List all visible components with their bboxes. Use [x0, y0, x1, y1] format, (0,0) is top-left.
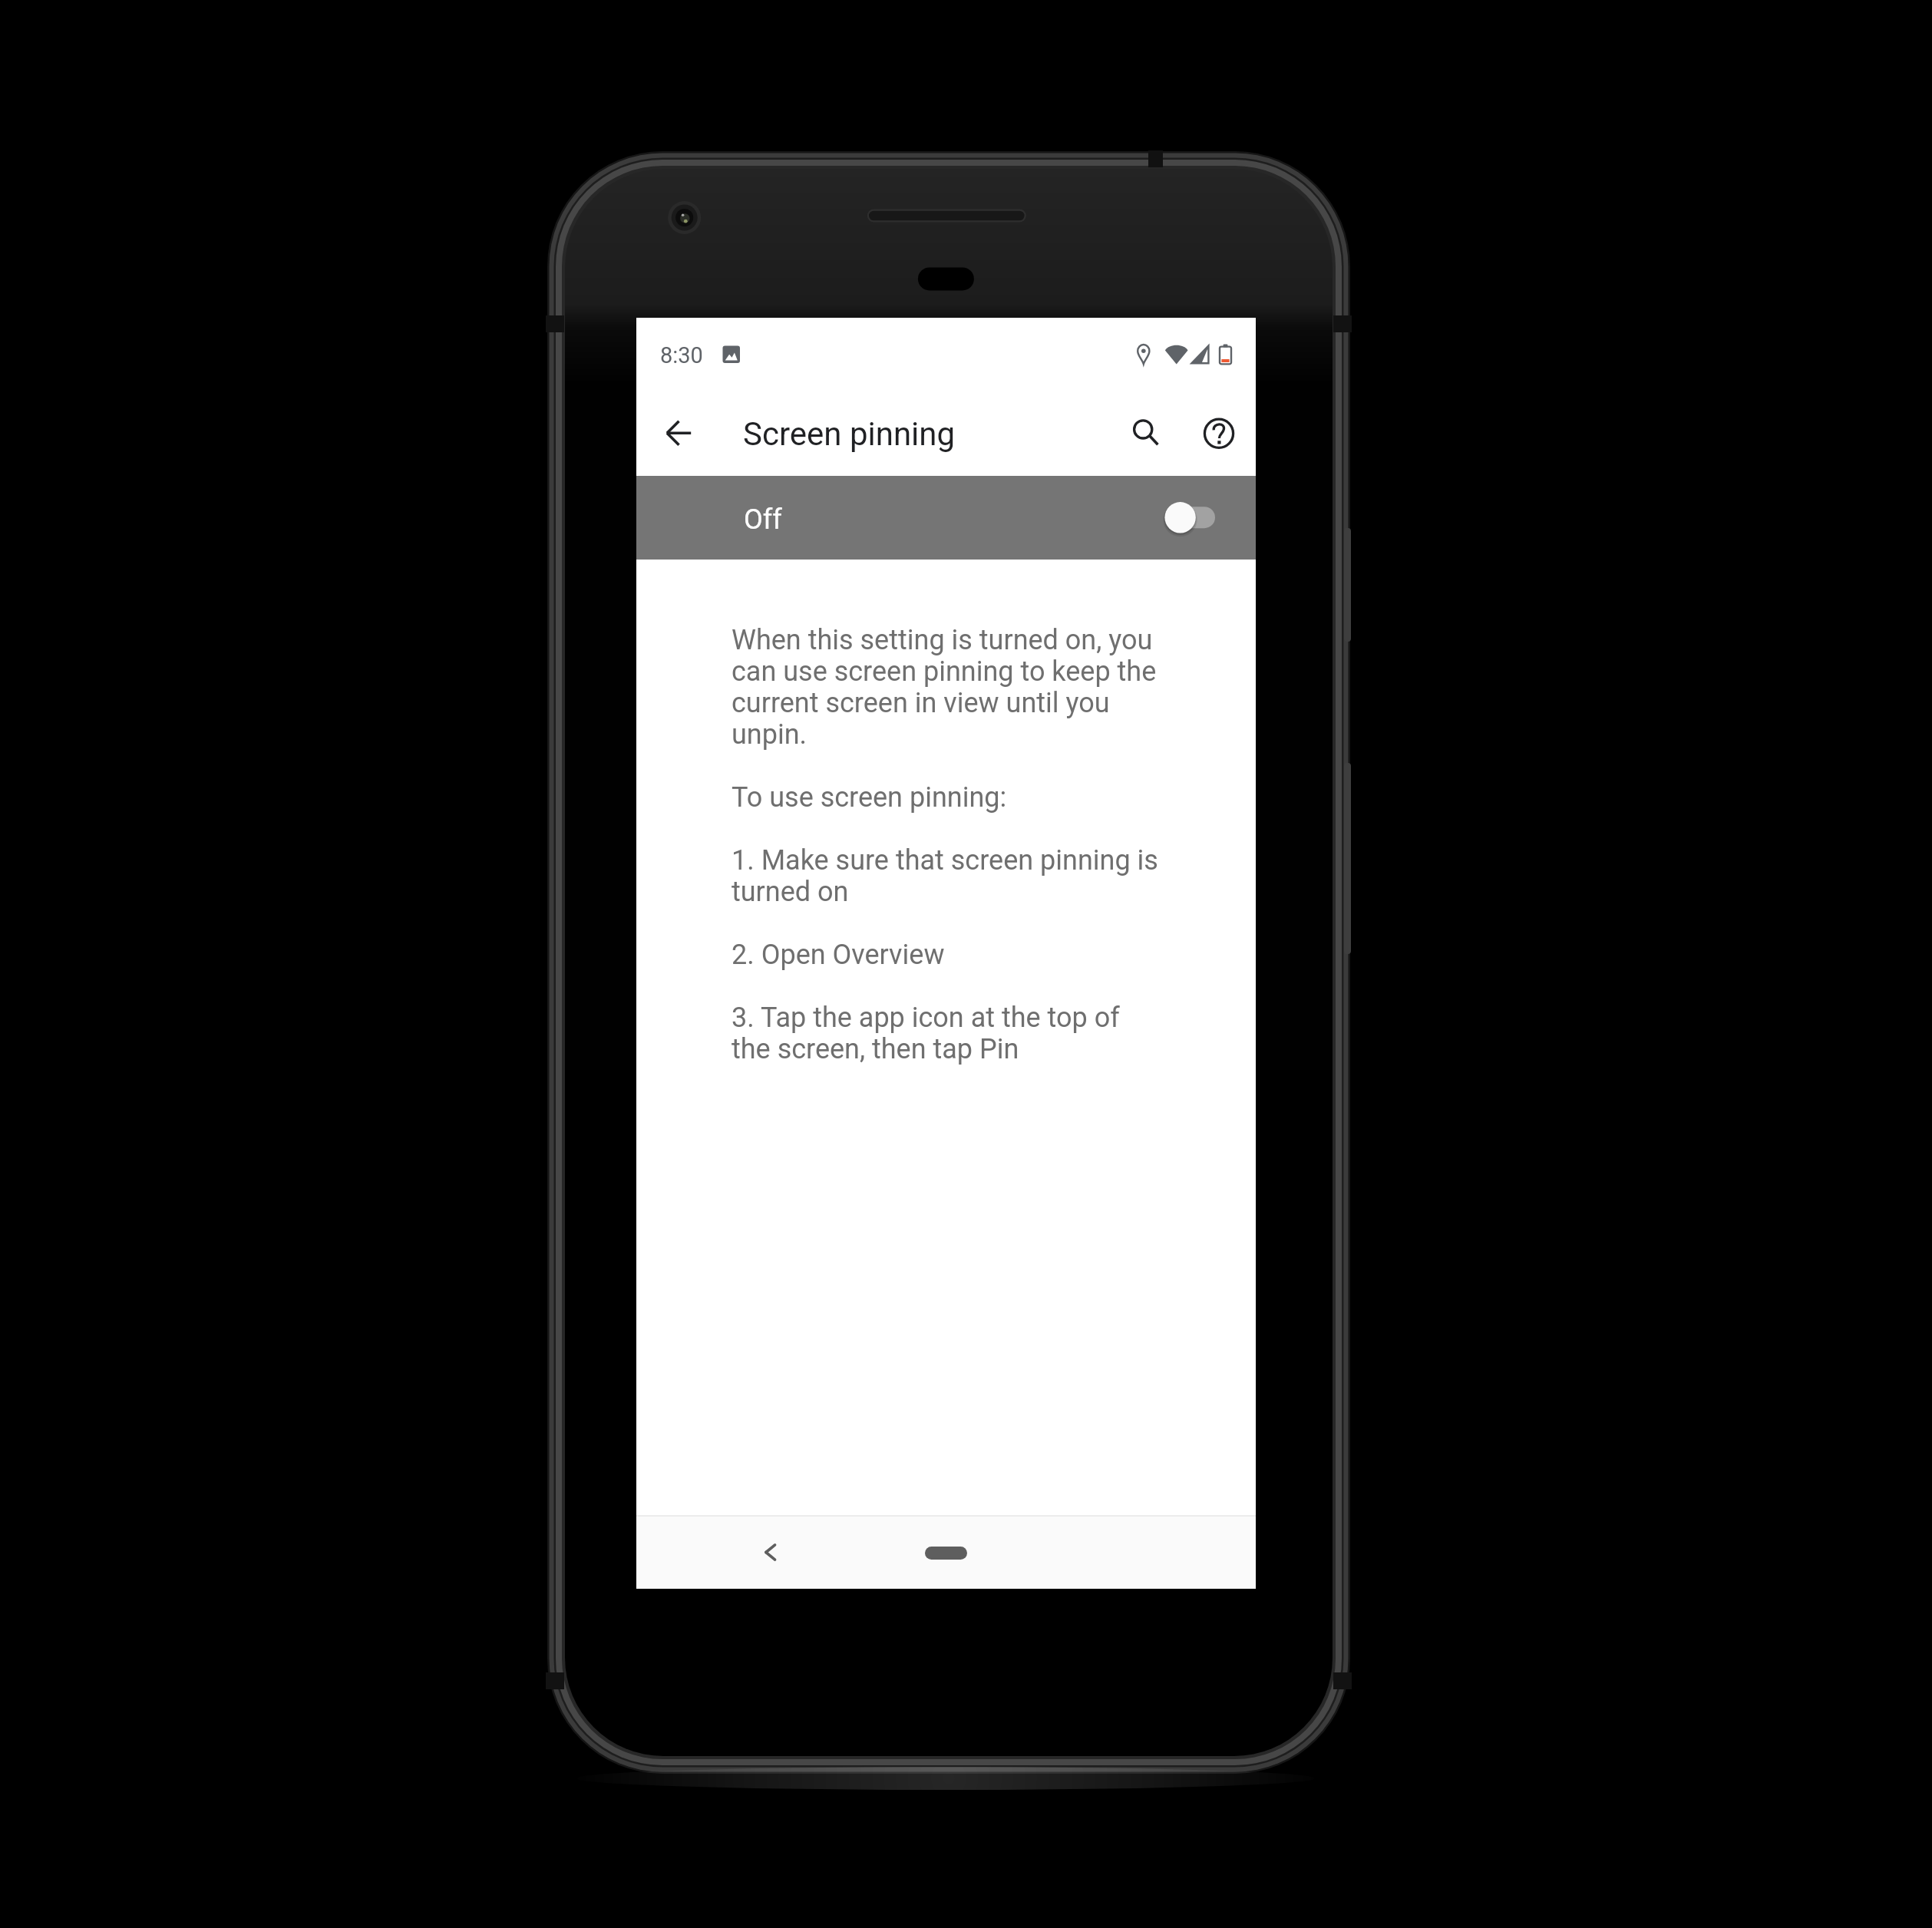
- button[interactable]: Home: [913, 1533, 979, 1572]
- staticText: 8:30: [660, 342, 703, 368]
- button[interactable]: Search: [1115, 402, 1176, 464]
- staticText: When this setting is turned on, you can …: [732, 624, 1161, 1100]
- button[interactable]: Off: [636, 476, 1256, 560]
- button[interactable]: Help: [1188, 403, 1250, 464]
- button[interactable]: Navigate up: [648, 402, 709, 464]
- other: Screen pinning, off: [1149, 487, 1234, 548]
- button[interactable]: Back: [739, 1522, 801, 1583]
- staticText: Off: [744, 503, 782, 536]
- staticText: Screen pinning: [743, 415, 956, 453]
